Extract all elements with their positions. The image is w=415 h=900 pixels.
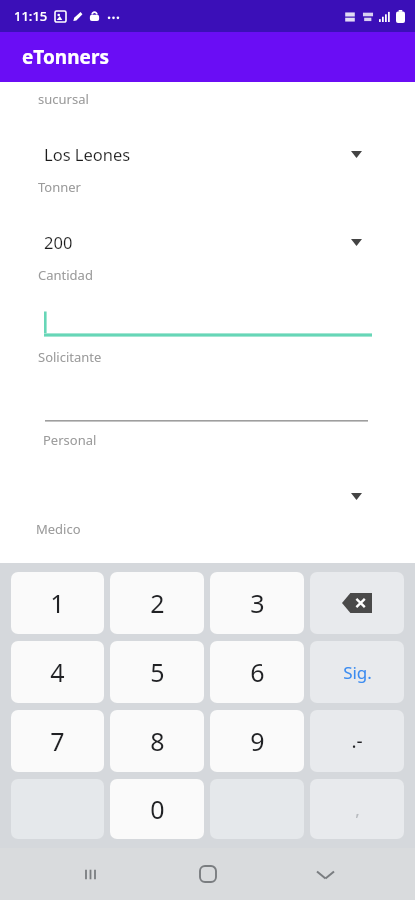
staticText: 7 — [50, 724, 65, 758]
staticText: 0 — [150, 792, 165, 826]
button[interactable]: 7 — [11, 710, 104, 772]
button[interactable]: 1 — [11, 572, 104, 634]
staticText: .- — [351, 728, 363, 754]
button[interactable]: .- — [310, 710, 404, 772]
button[interactable]: Sig. — [310, 641, 404, 703]
staticText: 11:15 — [14, 7, 48, 25]
staticText: sucursal — [38, 90, 89, 108]
button[interactable]: Ocultar teclado — [307, 856, 343, 892]
button[interactable]: Borrar — [310, 572, 404, 634]
button[interactable]: 8 — [110, 710, 204, 772]
staticText: 1 — [50, 586, 65, 620]
staticText: 4 — [50, 655, 65, 689]
staticText: 200 — [44, 231, 73, 253]
staticText: Los Leones — [44, 143, 131, 165]
button[interactable]: 6 — [210, 641, 304, 703]
staticText: 9 — [250, 724, 265, 758]
button[interactable] — [0, 406, 415, 422]
staticText: 3 — [250, 586, 265, 620]
button[interactable]: eTonners — [0, 32, 415, 82]
button[interactable]: 0 — [110, 779, 204, 839]
staticText: 6 — [250, 655, 265, 689]
button[interactable] — [0, 310, 415, 340]
staticText: Tonner — [38, 178, 81, 196]
staticText: 2 — [150, 586, 165, 620]
button[interactable]: Los Leones — [0, 141, 415, 167]
staticText: Cantidad — [38, 266, 93, 284]
button[interactable]: Recientes — [72, 856, 108, 892]
staticText: 8 — [150, 724, 165, 758]
button[interactable]: 200 — [0, 229, 415, 255]
staticText: Medico — [36, 520, 81, 538]
button[interactable]: 4 — [11, 641, 104, 703]
button[interactable]: 9 — [210, 710, 304, 772]
staticText: eTonners — [22, 44, 109, 70]
staticText: Personal — [43, 431, 97, 449]
button[interactable]: 2 — [110, 572, 204, 634]
staticText: 5 — [150, 655, 165, 689]
button[interactable]: Inicio — [188, 854, 228, 894]
button[interactable]: 5 — [110, 641, 204, 703]
staticText: Sig. — [343, 661, 372, 684]
staticText: Solicitante — [38, 348, 102, 366]
button[interactable]: Seleccionar medico — [0, 483, 415, 509]
staticText: , — [355, 798, 360, 821]
button[interactable]: 3 — [210, 572, 304, 634]
